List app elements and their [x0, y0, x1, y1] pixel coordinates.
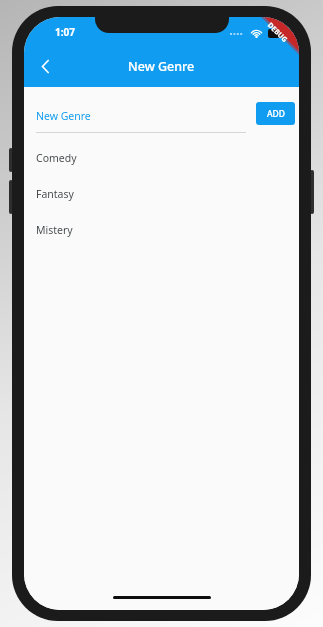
staticText: New Genre [36, 109, 91, 123]
staticText: DEBUG [265, 21, 290, 45]
button[interactable]: New Genre [36, 99, 246, 133]
staticText: Fantasy [36, 187, 74, 201]
button[interactable]: Back [29, 50, 61, 82]
staticText: 1:07 [55, 25, 75, 39]
button[interactable]: Fantasy [24, 176, 299, 212]
staticText: New Genre [128, 58, 195, 75]
staticText: ADD [267, 108, 285, 120]
button[interactable]: ADD [256, 102, 295, 125]
staticText: Comedy [36, 151, 77, 165]
button[interactable]: Mistery [24, 212, 299, 248]
button[interactable]: Comedy [24, 140, 299, 176]
staticText: Mistery [36, 223, 73, 237]
